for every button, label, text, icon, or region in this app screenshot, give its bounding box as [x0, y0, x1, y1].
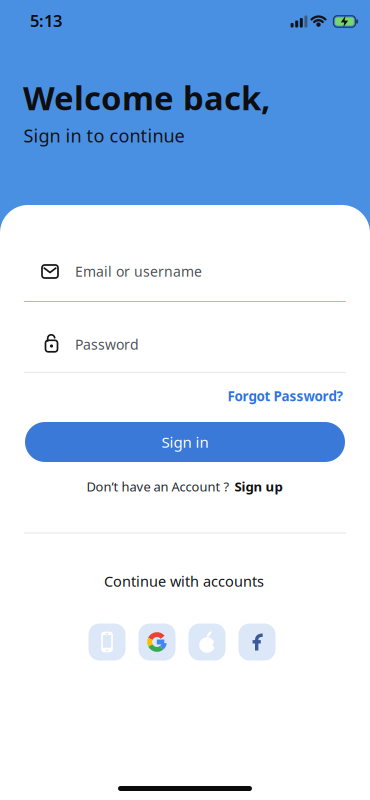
button[interactable]: Email or username — [24, 255, 346, 302]
button[interactable]: Continue with Apple — [188, 623, 225, 660]
staticText: Welcome back, — [23, 76, 270, 119]
staticText: 5:13 — [30, 9, 62, 31]
staticText: Sign in — [161, 432, 208, 452]
staticText: Sign up — [234, 478, 282, 495]
button[interactable]: Sign in — [25, 422, 345, 462]
staticText: Password — [75, 335, 139, 354]
staticText: Forgot Password? — [227, 387, 342, 405]
staticText: Sign in to continue — [23, 123, 184, 147]
button[interactable]: Sign up — [234, 478, 282, 495]
button[interactable]: Password — [24, 326, 346, 373]
button[interactable]: Continue with Google — [138, 623, 175, 660]
staticText: Email or username — [75, 262, 202, 281]
button[interactable]: Forgot Password? — [227, 387, 342, 405]
staticText: Continue with accounts — [104, 571, 264, 591]
button[interactable]: Continue with phone — [88, 623, 125, 660]
button[interactable]: Continue with Facebook — [238, 623, 275, 660]
staticText: Don’t have an Account ? — [86, 478, 229, 495]
